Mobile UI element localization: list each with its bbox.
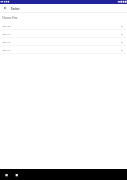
button[interactable]: Back [0,4,9,12]
button[interactable]: Year 2020 [0,22,127,30]
staticText: Year 2019 [2,33,11,36]
staticText: Year 2020 [2,25,11,28]
button[interactable]: Year 2018 [0,38,127,46]
staticText: Choose Year [2,16,18,20]
staticText: Rocket [11,7,20,10]
button[interactable]: Year 2019 [0,30,127,38]
staticText: Year 2017 [2,49,11,52]
button[interactable]: Year 2017 [0,46,127,54]
staticText: Year 2018 [2,41,11,44]
